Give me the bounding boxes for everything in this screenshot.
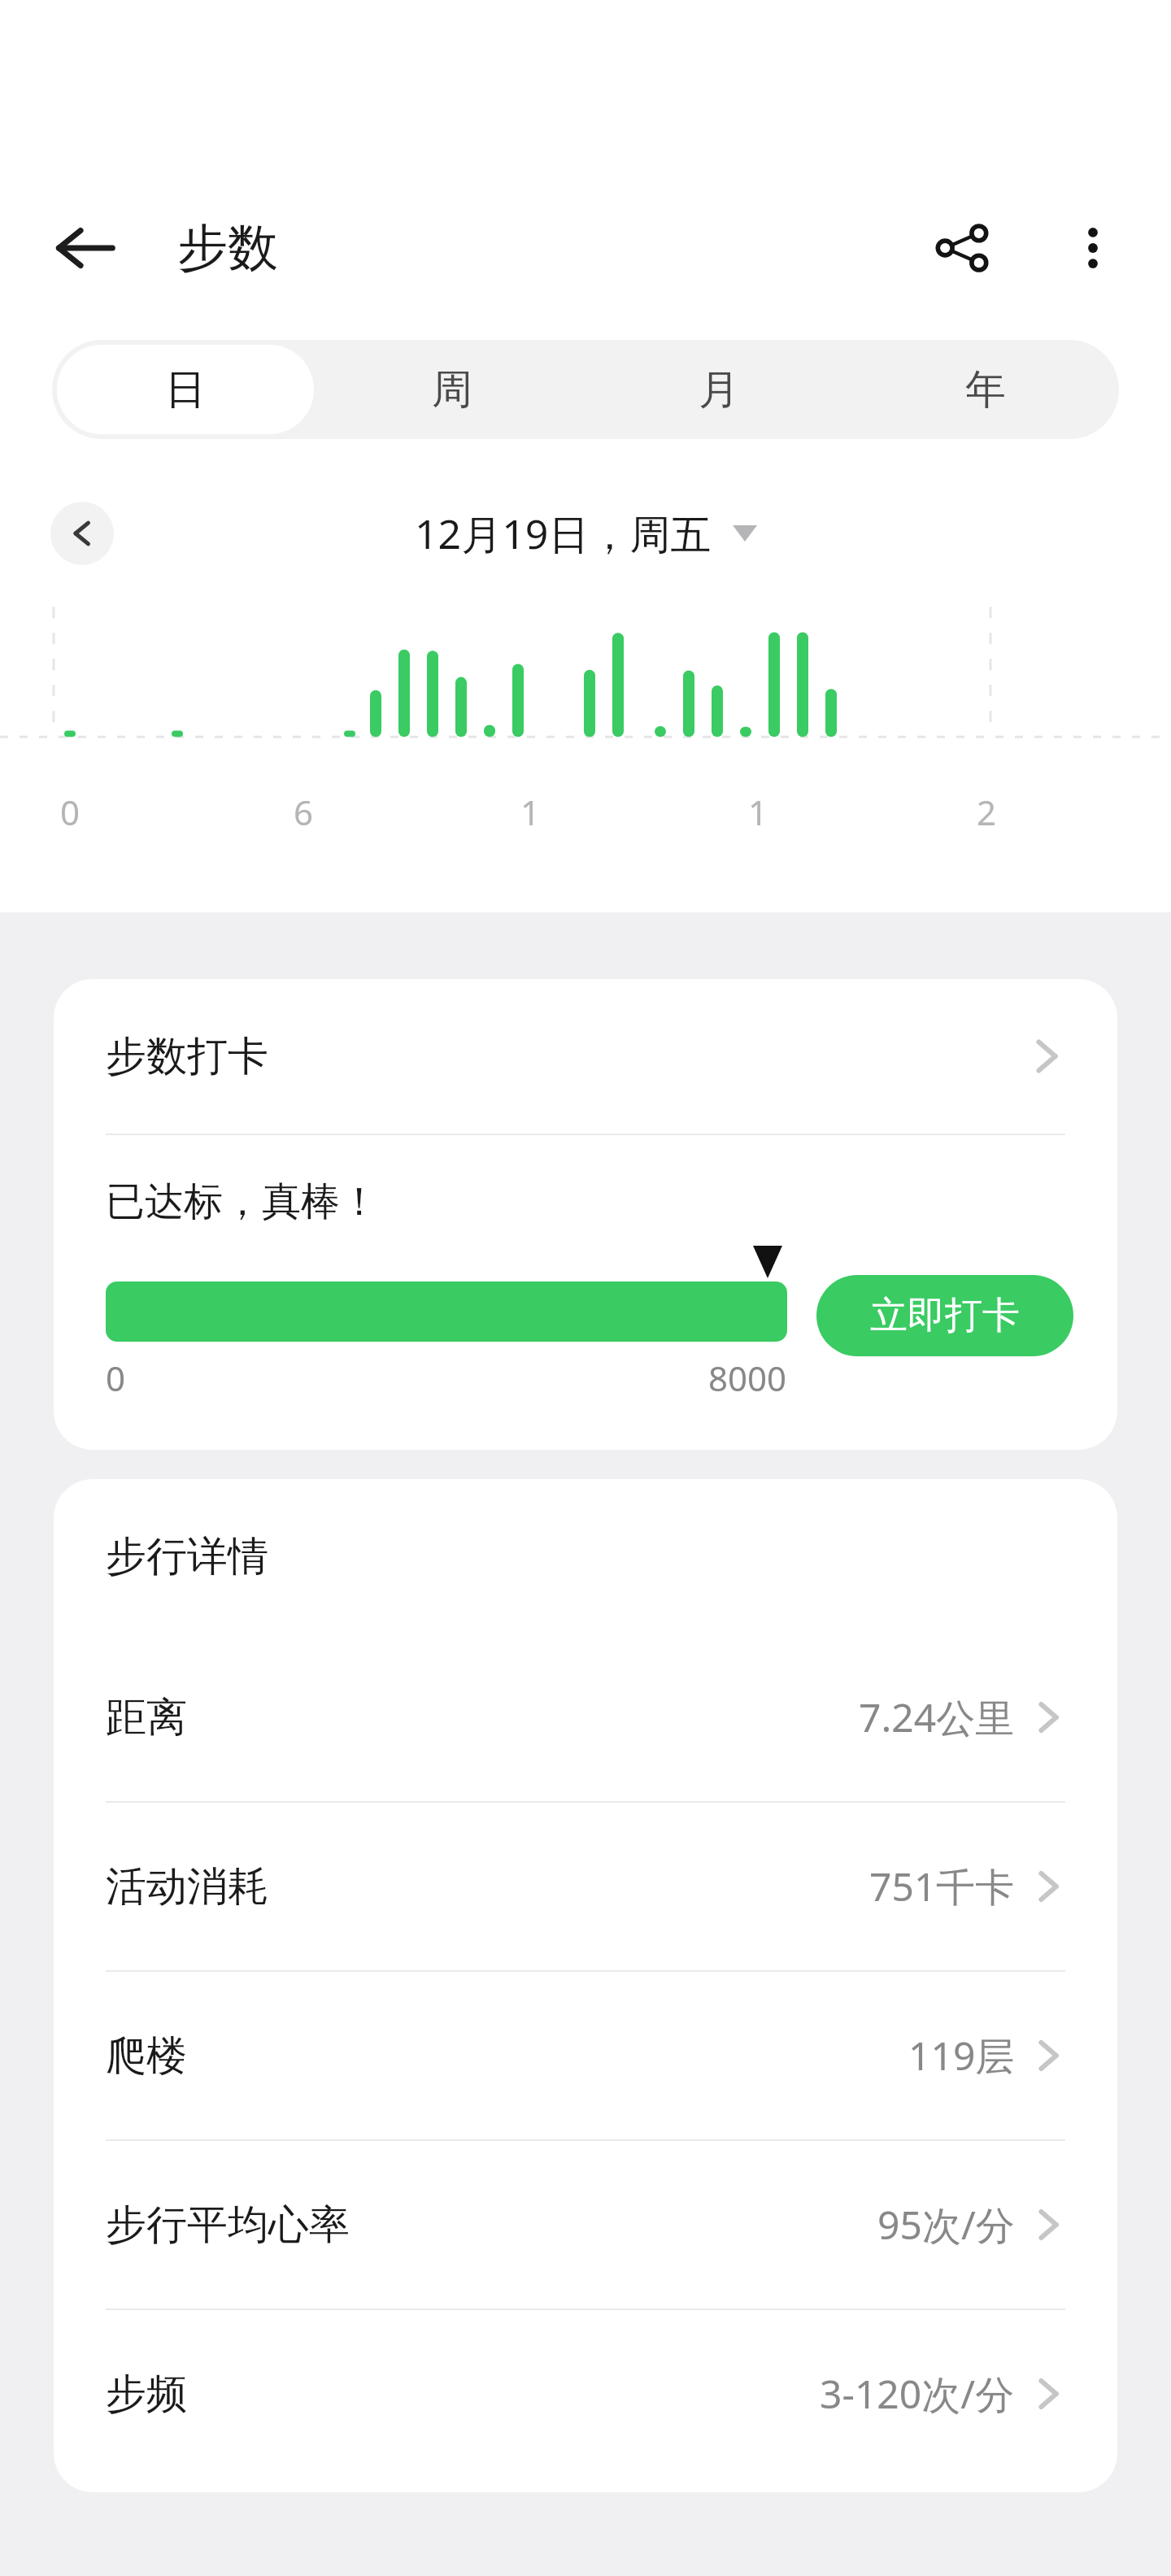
button[interactable]: 12月19日，周五	[415, 506, 757, 561]
staticText: 已达标，真棒！	[106, 1177, 379, 1226]
button[interactable]: Previous day	[50, 502, 114, 565]
button[interactable]: 爬楼	[54, 1972, 1117, 2139]
button[interactable]: 月	[590, 345, 847, 434]
staticText: 月	[699, 364, 739, 416]
button[interactable]: 步行平均心率	[54, 2141, 1117, 2308]
staticText: 6	[285, 789, 321, 835]
staticText: 24	[969, 789, 1004, 846]
staticText: 95次/分	[877, 2198, 1015, 2252]
staticText: 步频	[106, 2369, 820, 2420]
button[interactable]: Back	[34, 197, 137, 299]
staticText: 12月19日，周五	[415, 506, 712, 561]
staticText: 立即打卡	[870, 1292, 1020, 1339]
staticText: 3-120次/分	[820, 2367, 1015, 2421]
staticText: 年	[965, 364, 1006, 416]
staticText: 0	[106, 1355, 126, 1401]
staticText: 751千卡	[869, 1860, 1015, 1913]
staticText: 日	[165, 364, 206, 416]
button[interactable]: 步数打卡	[54, 979, 1117, 1134]
staticText: 爬楼	[106, 2030, 908, 2082]
staticText: 7.24公里	[859, 1690, 1015, 1744]
staticText: 距离	[106, 1692, 859, 1743]
staticText: 步行详情	[106, 1531, 268, 1582]
staticText: 18	[740, 789, 776, 846]
button[interactable]: More options	[1044, 199, 1142, 297]
staticText: 8000	[708, 1355, 787, 1401]
staticText: 步数打卡	[106, 1031, 1030, 1082]
staticText: 0	[52, 789, 88, 835]
button[interactable]: 步频	[54, 2310, 1117, 2478]
staticText: 步数	[177, 216, 278, 280]
button[interactable]: 年	[857, 345, 1114, 434]
button[interactable]: 立即打卡	[816, 1275, 1073, 1356]
staticText: 活动消耗	[106, 1861, 869, 1912]
button[interactable]: 活动消耗	[54, 1803, 1117, 1970]
button[interactable]: Share	[914, 199, 1012, 297]
button[interactable]: 周	[324, 345, 581, 434]
staticText: 12	[512, 789, 548, 846]
staticText: 119层	[908, 2029, 1015, 2082]
staticText: 步行平均心率	[106, 2200, 877, 2251]
button[interactable]: 距离	[54, 1634, 1117, 1801]
button[interactable]: 日	[57, 345, 314, 434]
staticText: 周	[432, 364, 472, 416]
